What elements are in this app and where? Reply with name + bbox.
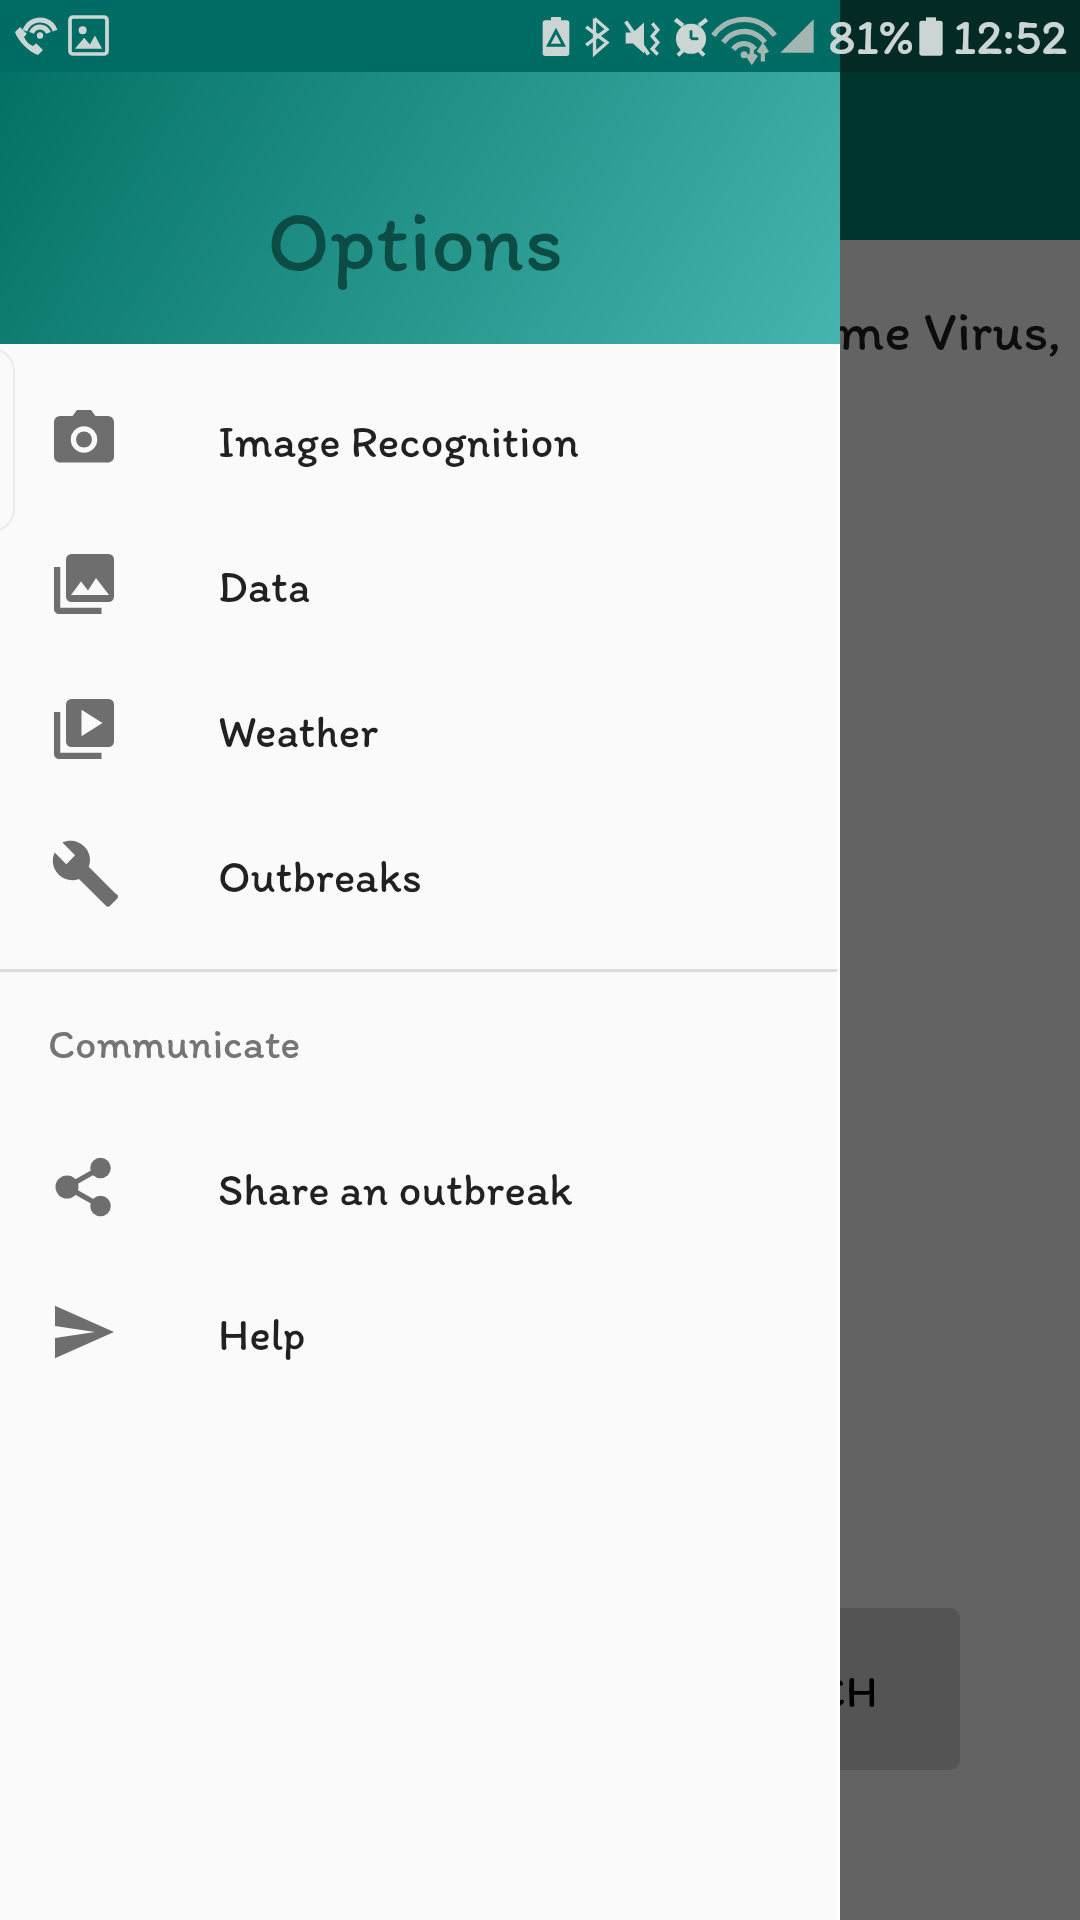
staticText: Help <box>218 1307 306 1361</box>
button[interactable]: Outbreaks <box>0 800 840 945</box>
staticText: Share an outbreak <box>218 1162 573 1216</box>
staticText: Weather <box>218 704 379 758</box>
staticText: 12:52 <box>953 6 1068 66</box>
staticText: 81% <box>828 6 914 66</box>
button[interactable]: Share an outbreak <box>0 1113 840 1258</box>
staticText: SEARCH <box>707 1663 878 1718</box>
staticText: Data <box>218 559 311 613</box>
button[interactable]: Image Recognition <box>0 365 840 510</box>
staticText: Image Recognition <box>218 414 579 468</box>
staticText: Options <box>267 188 564 292</box>
button[interactable]: Help <box>0 1258 840 1403</box>
button[interactable]: SEARCH <box>700 1608 960 1770</box>
button[interactable]: Data <box>0 510 840 655</box>
staticText: Zika, Ebola and Lyme Virus, <box>406 297 1062 364</box>
staticText: Communicate <box>48 1018 301 1068</box>
staticText: Outbreaks <box>218 849 422 903</box>
button[interactable]: Weather <box>0 655 840 800</box>
